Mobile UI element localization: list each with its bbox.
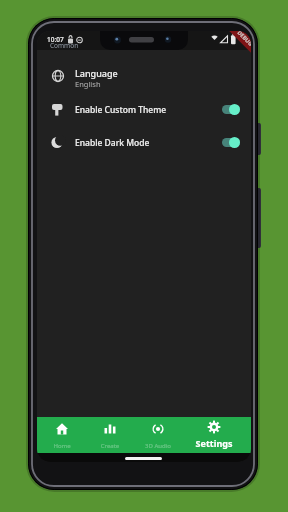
staticText: Settings <box>189 437 239 449</box>
staticText: Enable Custom Theme <box>75 104 167 116</box>
staticText: Common <box>50 41 79 50</box>
staticText: Home <box>37 442 87 450</box>
staticText: Create <box>85 442 135 450</box>
staticText: 10:07 <box>47 35 64 44</box>
staticText: DEBUG <box>236 31 251 47</box>
staticText: English <box>75 79 101 89</box>
staticText: Language <box>75 67 118 79</box>
staticText: 3D Audio <box>133 442 183 450</box>
staticText: Enable Dark Mode <box>75 137 150 149</box>
